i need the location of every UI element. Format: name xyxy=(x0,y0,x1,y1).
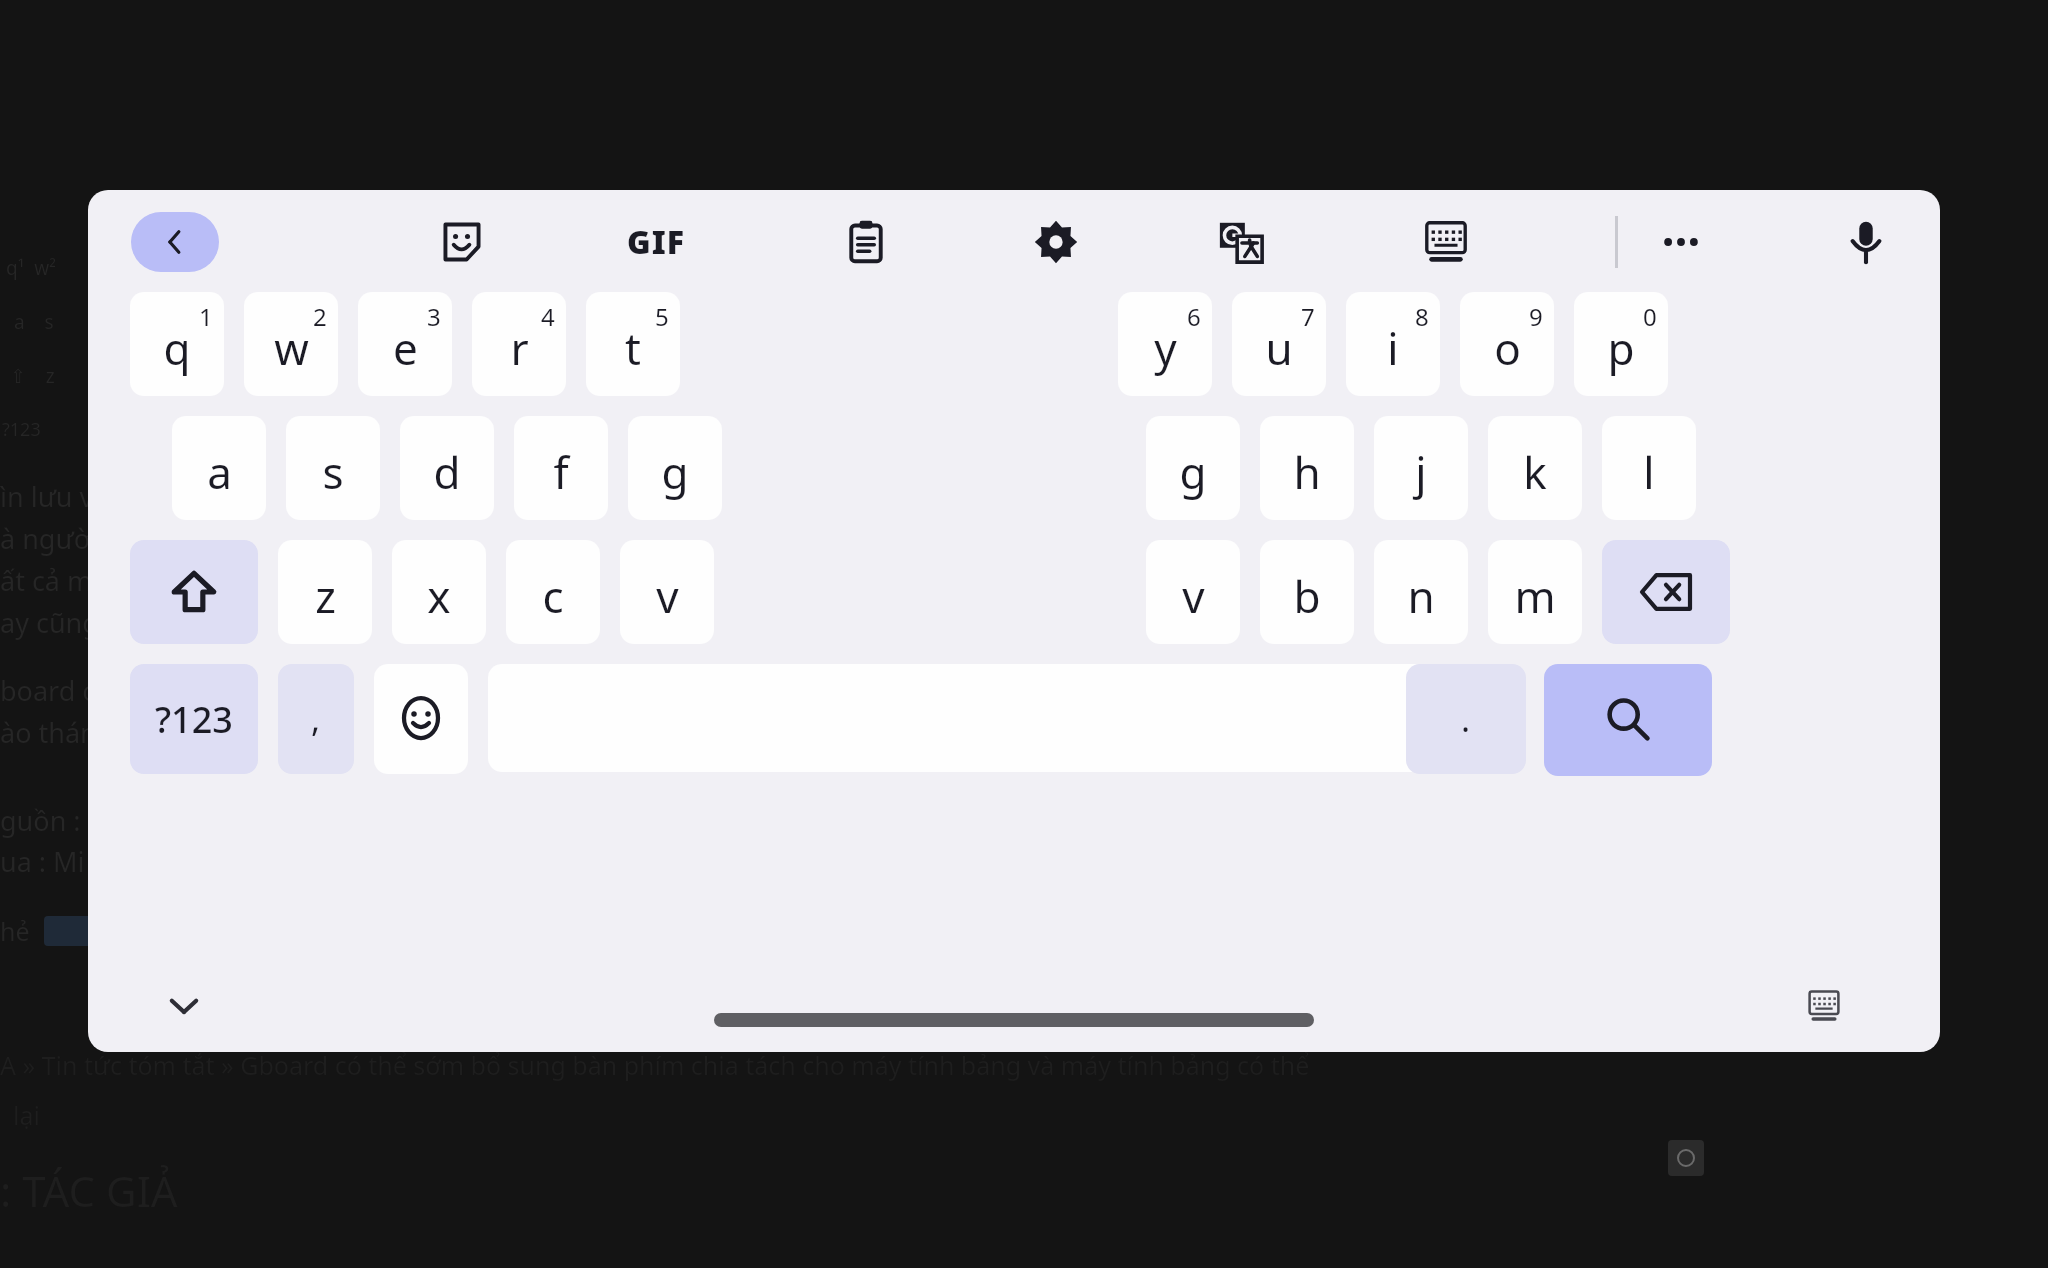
staticText: c xyxy=(542,566,564,626)
button[interactable]: Voice input xyxy=(1828,212,1904,272)
button[interactable]: b xyxy=(1260,540,1354,644)
staticText: q¹ w² xyxy=(6,255,56,281)
staticText: hẻ xyxy=(0,914,30,948)
button[interactable]: Keyboard mode xyxy=(1788,970,1860,1042)
staticText: h xyxy=(1293,442,1321,502)
staticText: a s xyxy=(14,309,54,335)
button[interactable]: v xyxy=(620,540,714,644)
button[interactable]: Back xyxy=(131,212,219,272)
button[interactable]: Clipboard xyxy=(828,212,904,272)
button[interactable]: a xyxy=(172,416,266,520)
staticText: ất cả m xyxy=(0,562,93,599)
staticText: g xyxy=(661,442,689,502)
staticText: ⇧ z xyxy=(10,363,55,389)
staticText: d xyxy=(433,442,461,502)
button[interactable]: d xyxy=(400,416,494,520)
staticText: x xyxy=(427,566,451,626)
button[interactable]: Shift xyxy=(130,540,258,644)
button[interactable]: o xyxy=(1460,292,1554,396)
button[interactable]: m xyxy=(1488,540,1582,644)
staticText: f xyxy=(553,442,569,502)
staticText: u xyxy=(1265,318,1293,378)
staticText: ào thán xyxy=(0,714,97,751)
button[interactable]: w xyxy=(244,292,338,396)
button[interactable]: r xyxy=(472,292,566,396)
staticText: o xyxy=(1494,318,1521,378)
button[interactable]: Settings xyxy=(1018,212,1094,272)
button[interactable]: g xyxy=(628,416,722,520)
button[interactable]: Hide keyboard xyxy=(148,970,220,1042)
button[interactable]: f xyxy=(514,416,608,520)
button[interactable]: ?123 xyxy=(130,664,258,774)
button[interactable]: p xyxy=(1574,292,1668,396)
staticText: 0 xyxy=(1643,300,1657,333)
button[interactable]: j xyxy=(1374,416,1468,520)
staticText: n xyxy=(1407,566,1435,626)
staticText: ?123 xyxy=(155,695,233,744)
button[interactable]: Emoji xyxy=(374,664,468,774)
button[interactable]: Search xyxy=(1544,664,1712,776)
staticText: : TÁC GIẢ xyxy=(0,1162,178,1219)
staticText: à ngườ xyxy=(0,520,91,557)
button[interactable]: h xyxy=(1260,416,1354,520)
staticText: 9 xyxy=(1529,300,1543,333)
staticText: w xyxy=(274,318,309,378)
staticText: . xyxy=(1461,696,1471,742)
staticText: s xyxy=(322,442,344,502)
staticText: ?123 xyxy=(2,417,41,442)
staticText: v xyxy=(1182,566,1205,626)
button[interactable]: Comma xyxy=(278,664,354,774)
button[interactable]: y xyxy=(1118,292,1212,396)
staticText: A » Tin tức tóm tắt » Gboard có thể sớm … xyxy=(0,1048,1310,1082)
button[interactable]: z xyxy=(278,540,372,644)
staticText: k xyxy=(1523,442,1547,502)
staticText: 5 xyxy=(655,300,669,333)
button[interactable]: l xyxy=(1602,416,1696,520)
button[interactable]: Period xyxy=(1406,664,1526,774)
button[interactable]: t xyxy=(586,292,680,396)
staticText: ua : Mi xyxy=(0,843,85,880)
button[interactable]: e xyxy=(358,292,452,396)
button[interactable] xyxy=(424,212,500,272)
button[interactable]: g xyxy=(1146,416,1240,520)
button[interactable]: n xyxy=(1374,540,1468,644)
button[interactable]: i xyxy=(1346,292,1440,396)
button[interactable]: Space xyxy=(488,664,1428,772)
staticText: 2 xyxy=(313,300,327,333)
button[interactable]: u xyxy=(1232,292,1326,396)
button[interactable]: GIF xyxy=(618,212,694,272)
button[interactable]: c xyxy=(506,540,600,644)
staticText: b xyxy=(1293,566,1321,626)
staticText: g xyxy=(1179,442,1207,502)
button[interactable]: Translate xyxy=(1203,212,1279,272)
staticText: ay cũng xyxy=(0,604,99,641)
staticText: e xyxy=(393,318,418,378)
staticText: ìn lưu v xyxy=(0,478,94,515)
staticText: v xyxy=(656,566,679,626)
staticText: i xyxy=(1387,318,1399,378)
button[interactable]: s xyxy=(286,416,380,520)
staticText: guồn : xyxy=(0,802,81,839)
button[interactable]: q xyxy=(130,292,224,396)
button[interactable]: Keyboard layout xyxy=(1408,212,1484,272)
staticText: q xyxy=(163,318,191,378)
staticText: p xyxy=(1607,318,1635,378)
staticText: 1 xyxy=(199,300,213,333)
button[interactable]: v xyxy=(1146,540,1240,644)
button[interactable]: x xyxy=(392,540,486,644)
staticText: board c xyxy=(0,672,96,709)
staticText: 3 xyxy=(427,300,441,333)
button[interactable]: k xyxy=(1488,416,1582,520)
staticText: 4 xyxy=(541,300,555,333)
button[interactable]: Backspace xyxy=(1602,540,1730,644)
staticText: 8 xyxy=(1415,300,1429,333)
staticText: z xyxy=(315,566,336,626)
staticText: y xyxy=(1154,318,1177,378)
button[interactable]: More options xyxy=(1643,212,1719,272)
staticText: l xyxy=(1643,442,1655,502)
staticText: , xyxy=(311,696,321,742)
staticText: t xyxy=(625,318,641,378)
staticText: j xyxy=(1415,442,1427,502)
staticText: 6 xyxy=(1187,300,1201,333)
